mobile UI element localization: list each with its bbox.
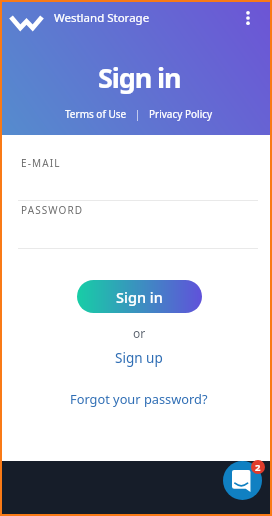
- staticText: PASSWORD: [21, 203, 84, 217]
- staticText: Sign up: [115, 349, 163, 367]
- staticText: Privacy Policy: [149, 107, 213, 121]
- button[interactable]: More options: [232, 2, 264, 34]
- staticText: Sign in: [116, 287, 163, 307]
- button[interactable]: Terms of Use: [65, 107, 127, 121]
- button[interactable]: Open chat: [223, 461, 262, 500]
- staticText: Westland Storage: [54, 10, 150, 26]
- staticText: Terms of Use: [65, 107, 127, 121]
- staticText: or: [133, 325, 146, 341]
- button[interactable]: Sign up: [109, 347, 169, 369]
- staticText: |: [127, 107, 149, 121]
- staticText: 2: [255, 461, 261, 474]
- staticText: Forgot your password?: [70, 390, 208, 407]
- staticText: E-MAIL: [21, 156, 61, 170]
- button[interactable]: Privacy Policy: [149, 107, 213, 121]
- button[interactable]: Forgot your password?: [64, 388, 214, 409]
- button[interactable]: Sign in: [77, 280, 202, 313]
- staticText: Sign in: [98, 59, 181, 96]
